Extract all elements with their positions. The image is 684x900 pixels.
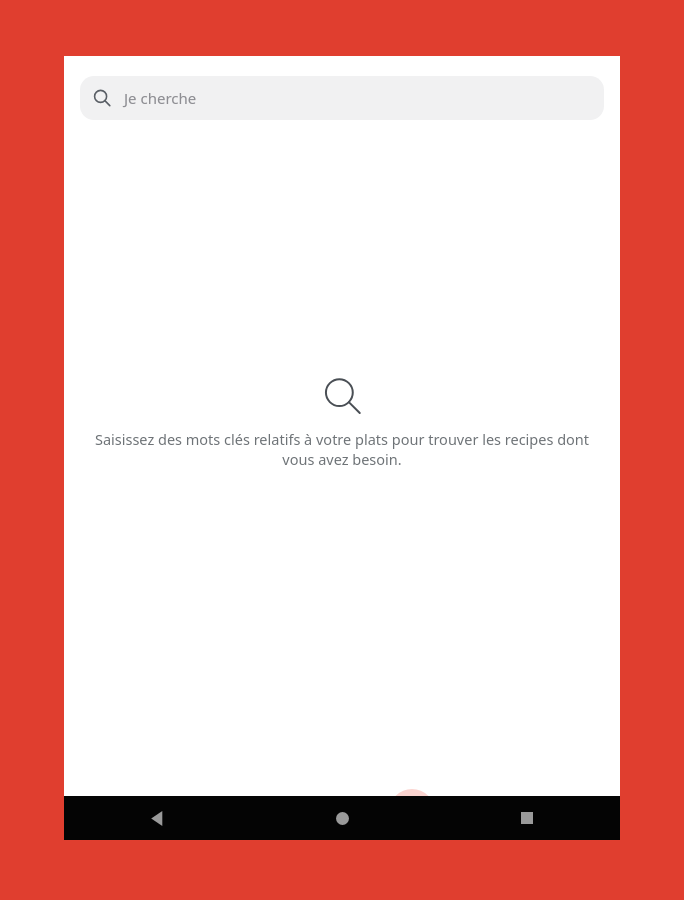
button[interactable]: Favorites [528,789,574,835]
button[interactable]: Je cherche [80,76,604,120]
button[interactable]: Home [111,789,157,835]
button[interactable]: Categories [250,789,296,835]
button[interactable]: Recent apps [510,801,544,835]
button[interactable]: Back [140,801,174,835]
staticText: Saisissez des mots clés relatifs à votre… [82,429,602,470]
button[interactable]: Search [389,789,435,835]
staticText: Je cherche [124,88,197,108]
button[interactable]: Home [325,801,359,835]
